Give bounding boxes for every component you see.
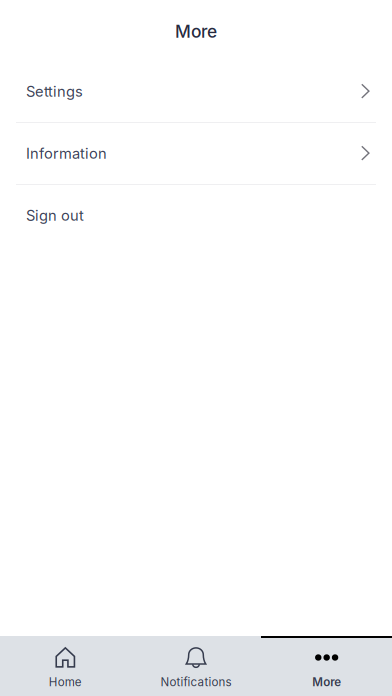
staticText: More	[175, 21, 217, 42]
button[interactable]: Information	[0, 123, 392, 184]
staticText: Sign out	[26, 207, 84, 224]
button[interactable]: Settings	[0, 61, 392, 122]
button[interactable]: More	[261, 636, 392, 696]
button[interactable]: Sign out	[0, 185, 392, 246]
staticText: Notifications	[160, 675, 231, 689]
staticText: Settings	[26, 83, 83, 100]
staticText: Information	[26, 145, 107, 162]
button[interactable]: Home	[0, 636, 131, 696]
staticText: More	[312, 675, 341, 689]
staticText: Home	[49, 675, 82, 689]
button[interactable]: Notifications	[131, 636, 261, 696]
